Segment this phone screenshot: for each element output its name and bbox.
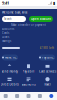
button[interactable]: More: [46, 92, 57, 100]
button[interactable]: Savings: [2, 39, 22, 43]
staticText: Loans: [2, 35, 9, 39]
staticText: Accounts: [2, 27, 14, 31]
button[interactable]: Cards: [23, 92, 34, 100]
staticText: Cards: [2, 31, 9, 35]
staticText: Savings: [2, 39, 11, 43]
button[interactable]: Loans: [2, 35, 22, 39]
button[interactable]: Send money: [0, 62, 19, 75]
button[interactable]: Card services: [38, 62, 57, 75]
button[interactable]: Pay: [11, 92, 23, 100]
button[interactable]: Direct Debits: [0, 75, 19, 88]
button[interactable]: Pay someone: [39, 54, 55, 60]
button[interactable]: Accounts: [2, 27, 22, 31]
staticText: Travel: [44, 83, 51, 86]
staticText: 9:41: [2, 0, 9, 6]
staticText: Pay someone: [42, 56, 55, 59]
button[interactable]: Statements: [19, 75, 38, 88]
staticText: Card services: [39, 70, 56, 73]
button[interactable]: Home: [0, 92, 11, 100]
button[interactable]: Move money: [2, 54, 18, 60]
staticText: Search: [4, 17, 12, 21]
staticText: £180 left: [40, 46, 54, 50]
staticText: Direct Debits: [0, 83, 18, 86]
staticText: Pay a bill: [22, 70, 34, 73]
staticText: ..ıl ▮: [48, 0, 55, 6]
staticText: Make a transfer or payment: [11, 23, 46, 27]
staticText: Move money: [5, 56, 18, 59]
button[interactable]: Open account: [29, 16, 53, 22]
button[interactable]: Travel: [38, 75, 57, 88]
button[interactable]: Search: [2, 16, 26, 22]
button[interactable]: Apply: [34, 92, 46, 100]
button[interactable]: Cards: [2, 31, 22, 35]
staticText: Open account: [31, 17, 51, 21]
staticText: Welcome back, Alex: [2, 11, 27, 14]
button[interactable]: Pay a bill: [19, 62, 38, 75]
staticText: Statements: [21, 83, 35, 86]
staticText: Send money: [1, 70, 17, 73]
